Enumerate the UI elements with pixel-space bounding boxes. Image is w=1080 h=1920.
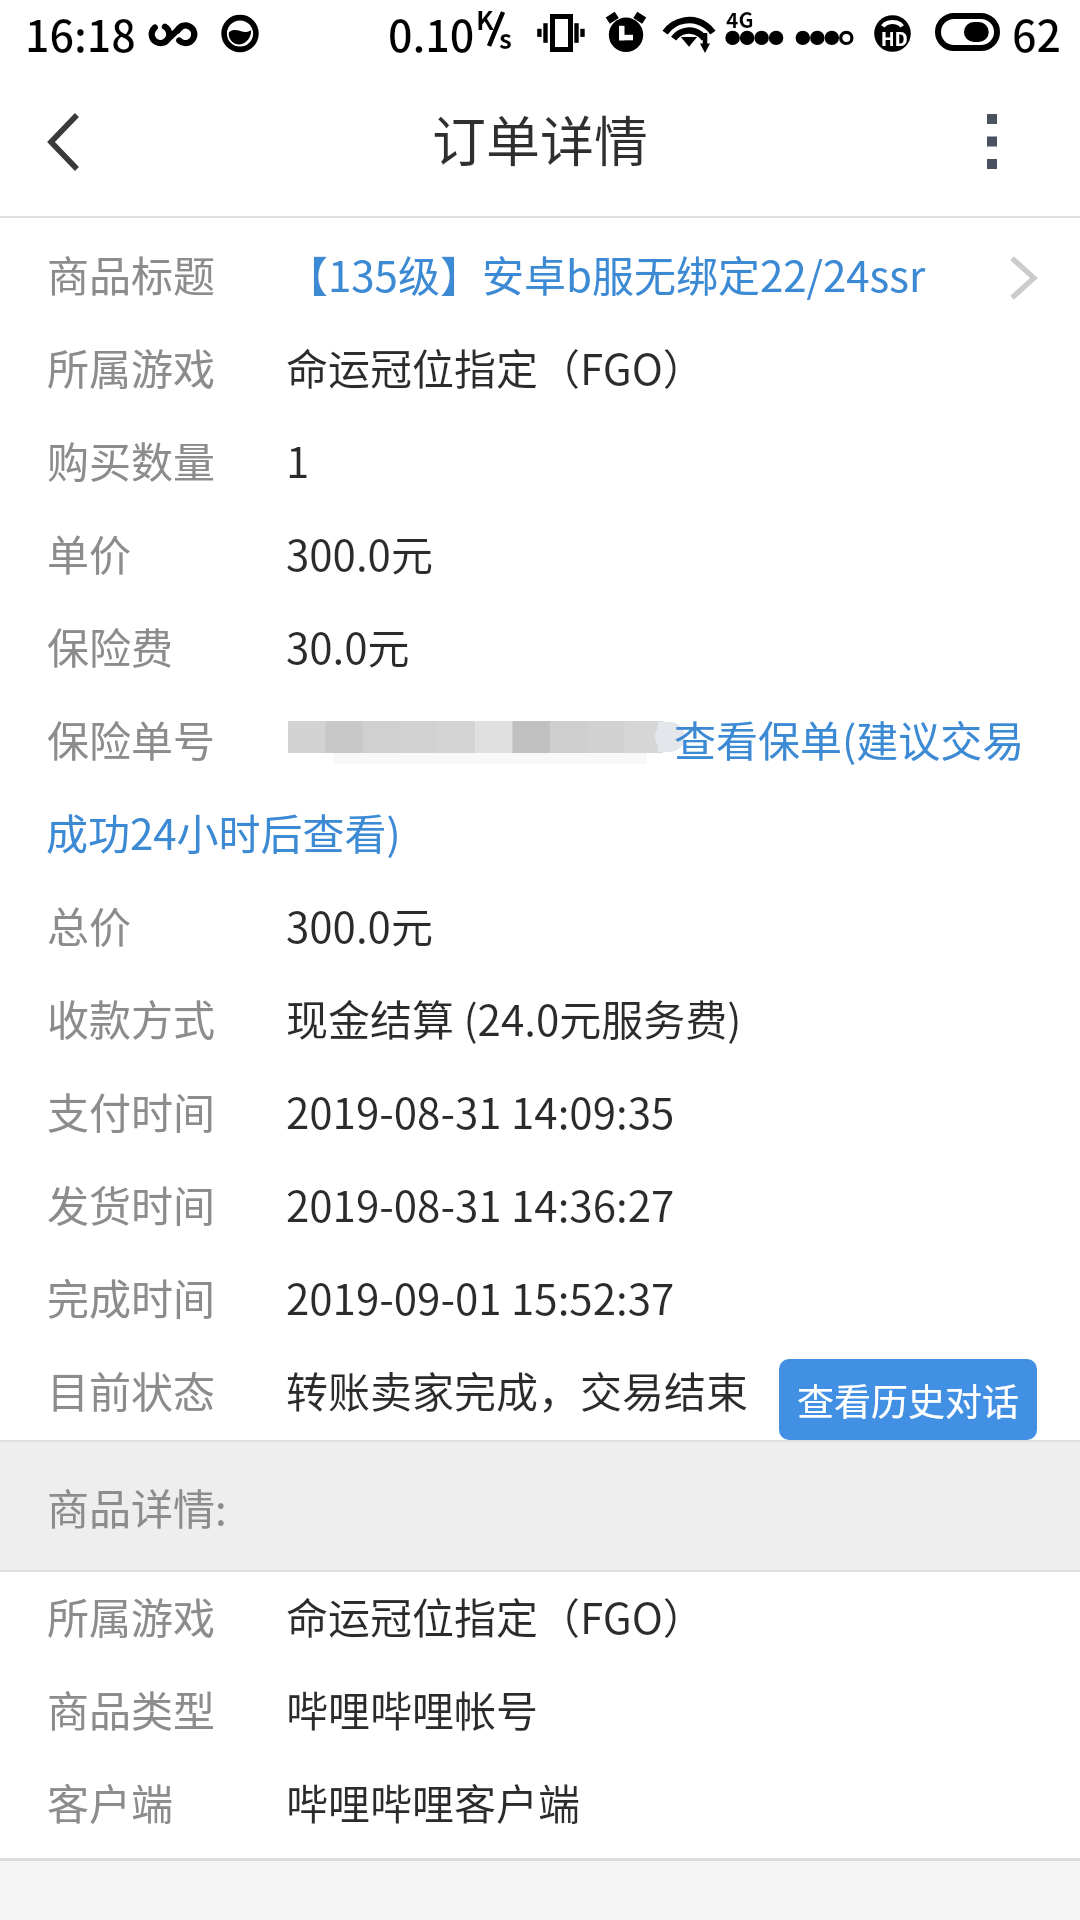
staticText: 保险单号 xyxy=(47,708,216,769)
staticText: 现金结算 (24.0元服务费) xyxy=(286,987,742,1048)
staticText: 所属游戏 xyxy=(47,1585,216,1646)
staticText: 成功24小时后查看) xyxy=(46,801,401,862)
staticText: 4G xyxy=(726,4,754,34)
staticText: 发货时间 xyxy=(47,1173,216,1234)
staticText: 命运冠位指定（FGO） xyxy=(286,336,705,397)
staticText: 查看历史对话 xyxy=(797,1373,1019,1427)
staticText: 目前状态 xyxy=(47,1359,216,1420)
staticText: 300.0元 xyxy=(286,894,433,955)
staticText: 哔哩哔哩帐号 xyxy=(286,1678,539,1739)
staticText: 客户端 xyxy=(47,1771,174,1832)
staticText: 30.0元 xyxy=(286,615,410,676)
staticText: 收款方式 xyxy=(47,987,216,1048)
staticText: 商品详情: xyxy=(47,1476,227,1537)
staticText: 2019-08-31 14:09:35 xyxy=(286,1080,675,1141)
staticText: 300.0元 xyxy=(286,522,433,583)
staticText: 所属游戏 xyxy=(47,336,216,397)
staticText: 哔哩哔哩客户端 xyxy=(286,1771,581,1832)
staticText: 转账卖家完成，交易结束 xyxy=(286,1359,749,1420)
staticText: 62 xyxy=(1012,2,1062,64)
staticText: 0.10 xyxy=(388,2,475,64)
staticText: HD xyxy=(881,25,908,51)
staticText: 购买数量 xyxy=(47,429,216,490)
button[interactable]: Back xyxy=(0,80,126,216)
button[interactable]: 查看保单(建议交易 xyxy=(674,692,1025,785)
staticText: 商品标题 xyxy=(47,243,216,304)
staticText: 2019-08-31 14:36:27 xyxy=(286,1173,675,1234)
staticText: 总价 xyxy=(47,894,132,955)
staticText: 1 xyxy=(286,429,310,490)
staticText: 2019-09-01 15:52:37 xyxy=(286,1266,675,1327)
staticText: 【135级】安卓b服无绑定22/24ssr xyxy=(286,243,926,304)
button[interactable]: 成功24小时后查看) xyxy=(46,785,401,878)
staticText: 订单详情 xyxy=(432,99,648,177)
staticText: 商品类型 xyxy=(47,1678,216,1739)
button[interactable]: 查看历史对话 xyxy=(779,1359,1037,1440)
staticText: 命运冠位指定（FGO） xyxy=(286,1585,705,1646)
staticText: 保险费 xyxy=(47,615,174,676)
staticText: K xyxy=(476,0,494,38)
button[interactable]: More options xyxy=(950,80,1080,216)
staticText: 单价 xyxy=(47,522,132,583)
staticText: 查看保单(建议交易 xyxy=(674,708,1025,769)
staticText: 16:18 xyxy=(25,2,136,64)
staticText: s xyxy=(499,19,512,57)
staticText: 完成时间 xyxy=(47,1266,216,1327)
button[interactable]: 商品标题 xyxy=(0,227,1080,320)
staticText: 支付时间 xyxy=(47,1080,216,1141)
